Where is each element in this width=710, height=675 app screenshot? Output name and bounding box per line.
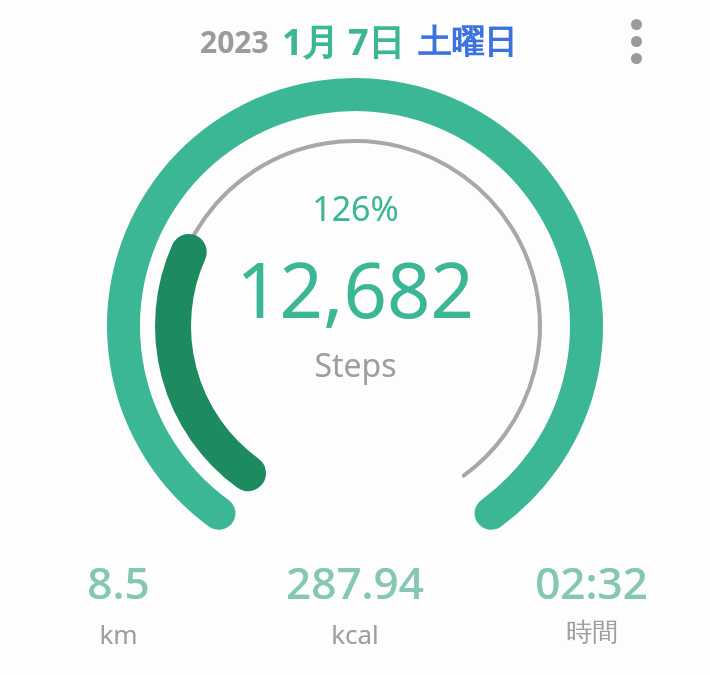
- staticText: km: [99, 616, 138, 651]
- staticText: kcal: [331, 616, 379, 651]
- button[interactable]: 8.5: [0, 548, 236, 655]
- staticText: 287.94: [286, 552, 424, 612]
- button[interactable]: 287.94: [236, 548, 473, 655]
- button[interactable]: More options: [621, 9, 652, 74]
- staticText: 02:32: [535, 552, 648, 612]
- staticText: 126%: [312, 185, 399, 231]
- button[interactable]: 02:32: [473, 548, 710, 653]
- staticText: 時間: [566, 616, 618, 649]
- staticText: 8.5: [87, 552, 150, 612]
- staticText: 12,682: [236, 237, 474, 341]
- staticText: 土曜日: [418, 21, 517, 63]
- staticText: Steps: [314, 343, 397, 387]
- staticText: 1月 7日: [282, 17, 405, 66]
- staticText: 2023: [200, 21, 269, 62]
